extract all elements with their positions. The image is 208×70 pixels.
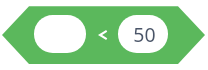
button[interactable]: Less than <box>94 23 114 47</box>
staticText: 50 <box>133 21 156 48</box>
button[interactable]: Value <box>34 15 86 53</box>
button[interactable]: 50 <box>118 15 168 53</box>
